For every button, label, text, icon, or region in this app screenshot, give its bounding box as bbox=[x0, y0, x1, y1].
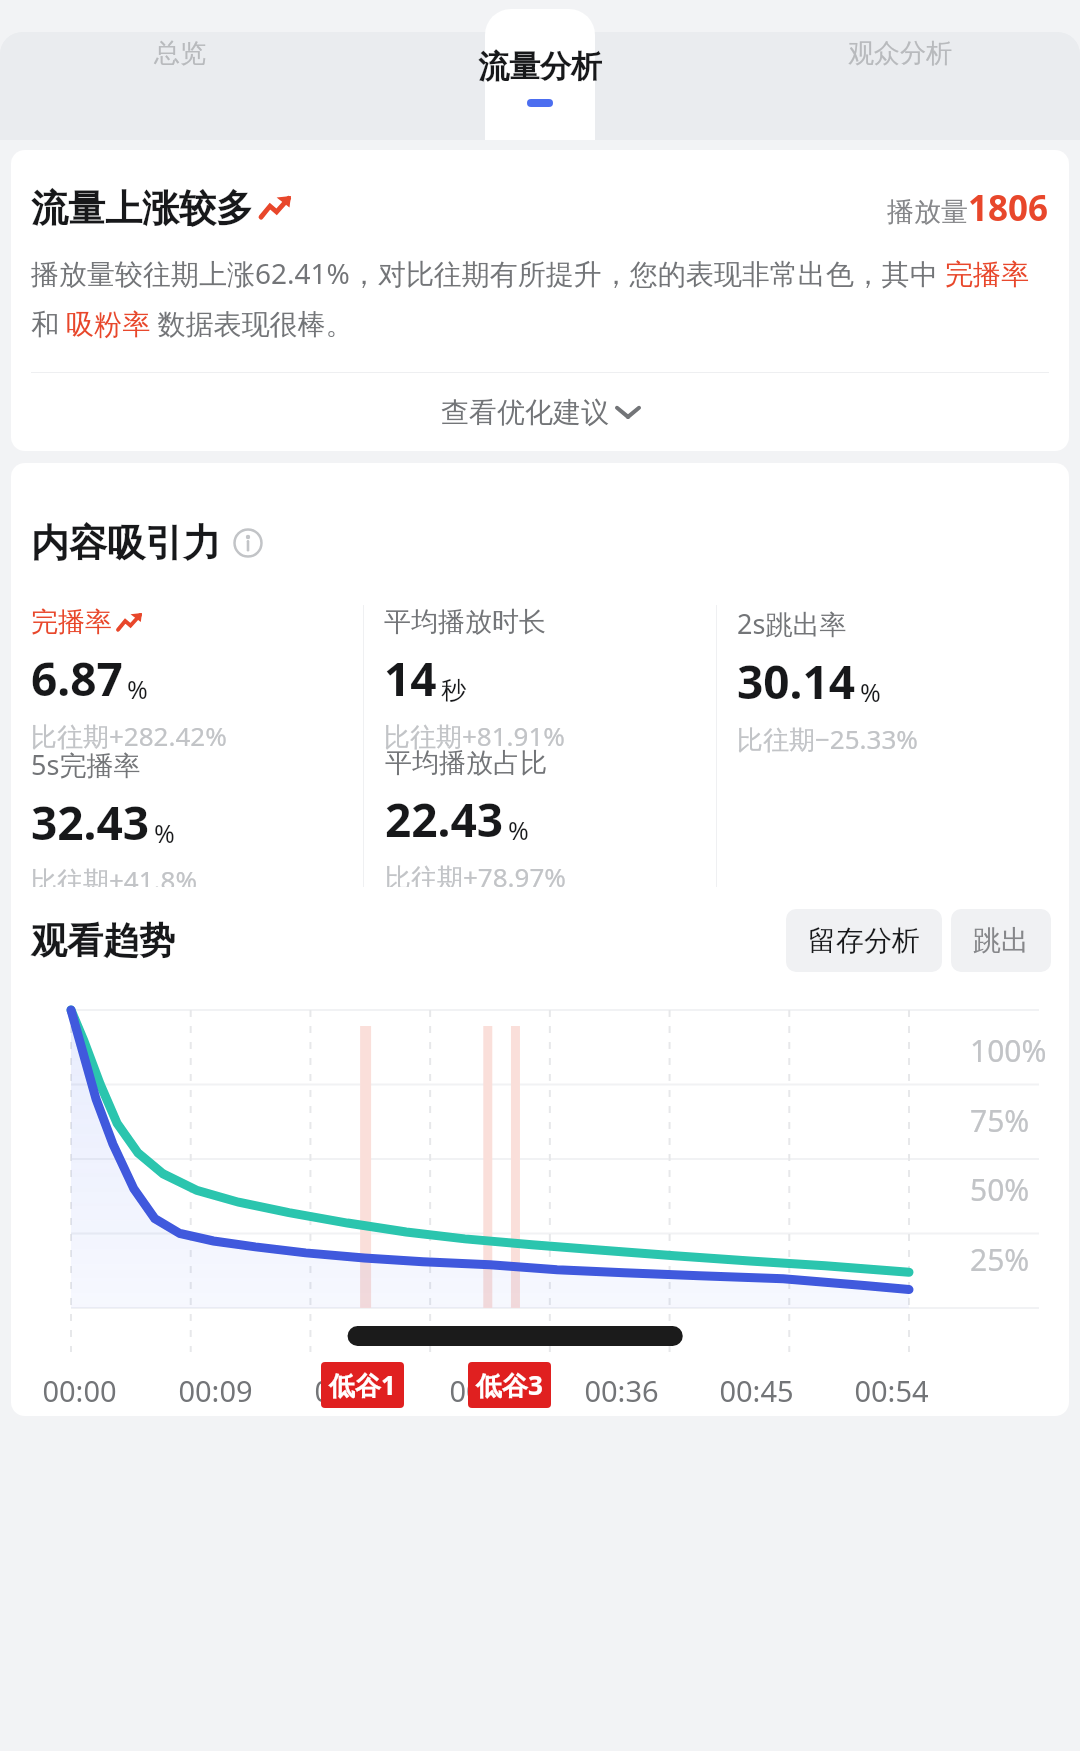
button[interactable]: 说明 bbox=[233, 528, 263, 558]
staticText: 00:18 bbox=[314, 1371, 389, 1410]
staticText: 观众分析 bbox=[848, 37, 952, 70]
staticText: 比往期+81.91% bbox=[384, 718, 565, 754]
staticText: 比往期+41.8% bbox=[31, 862, 198, 887]
staticText: 流量上涨较多 bbox=[31, 185, 253, 232]
staticText: 平均播放时长 bbox=[384, 605, 546, 639]
staticText: % bbox=[508, 813, 529, 847]
staticText: 总览 bbox=[154, 37, 206, 70]
staticText: 00:54 bbox=[854, 1371, 929, 1410]
button[interactable]: 观众分析 bbox=[720, 9, 1080, 117]
staticText: 内容吸引力 bbox=[31, 519, 221, 567]
button[interactable]: 流量分析 bbox=[360, 9, 720, 140]
staticText: 比往期+282.42% bbox=[31, 718, 227, 754]
staticText: 32.43 bbox=[31, 791, 150, 854]
staticText: 低谷1 bbox=[329, 1367, 396, 1403]
staticText: 流量分析 bbox=[478, 47, 602, 86]
staticText: 00:00 bbox=[42, 1371, 117, 1410]
button[interactable]: 查看优化建议 bbox=[31, 373, 1049, 451]
staticText: 5s完播率 bbox=[31, 746, 141, 783]
staticText: 22.43 bbox=[385, 788, 504, 851]
staticText: 00:09 bbox=[178, 1371, 253, 1410]
staticText: 观看趋势 bbox=[31, 918, 175, 963]
staticText: % bbox=[127, 672, 148, 706]
button[interactable]: 跳出 bbox=[951, 909, 1051, 972]
button[interactable]: 低谷1 bbox=[321, 1362, 404, 1408]
staticText: % bbox=[860, 675, 881, 709]
staticText: % bbox=[154, 816, 175, 850]
staticText: 平均播放占比 bbox=[385, 746, 547, 780]
staticText: 30.14 bbox=[737, 650, 856, 713]
staticText: 比往期+78.97% bbox=[385, 859, 566, 887]
staticText: 14 bbox=[384, 647, 437, 710]
staticText: 00:45 bbox=[719, 1371, 794, 1410]
staticText: 查看优化建议 bbox=[441, 395, 609, 430]
staticText: 00:27 bbox=[449, 1371, 524, 1410]
staticText: 比往期−25.33% bbox=[737, 721, 918, 757]
staticText: 6.87 bbox=[31, 647, 123, 710]
button[interactable]: 低谷3 bbox=[468, 1362, 551, 1408]
staticText: 完播率 bbox=[31, 605, 112, 639]
button[interactable]: 留存分析 bbox=[786, 909, 942, 972]
staticText: 播放量较往期上涨62.41%，对比往期有所提升，您的表现非常出色，其中 完播率 … bbox=[31, 254, 1049, 342]
staticText: 25% bbox=[970, 1239, 1030, 1280]
staticText: 2s跳出率 bbox=[737, 605, 847, 642]
staticText: 50% bbox=[970, 1169, 1030, 1210]
staticText: 秒 bbox=[441, 675, 466, 706]
staticText: 00:36 bbox=[584, 1371, 659, 1410]
button[interactable]: 总览 bbox=[0, 9, 360, 117]
staticText: 低谷3 bbox=[476, 1367, 543, 1403]
staticText: 跳出 bbox=[973, 923, 1029, 958]
staticText: 留存分析 bbox=[808, 923, 920, 958]
staticText: 播放量1806 bbox=[887, 184, 1049, 232]
staticText: 100% bbox=[970, 1030, 1047, 1071]
staticText: 75% bbox=[970, 1100, 1030, 1141]
